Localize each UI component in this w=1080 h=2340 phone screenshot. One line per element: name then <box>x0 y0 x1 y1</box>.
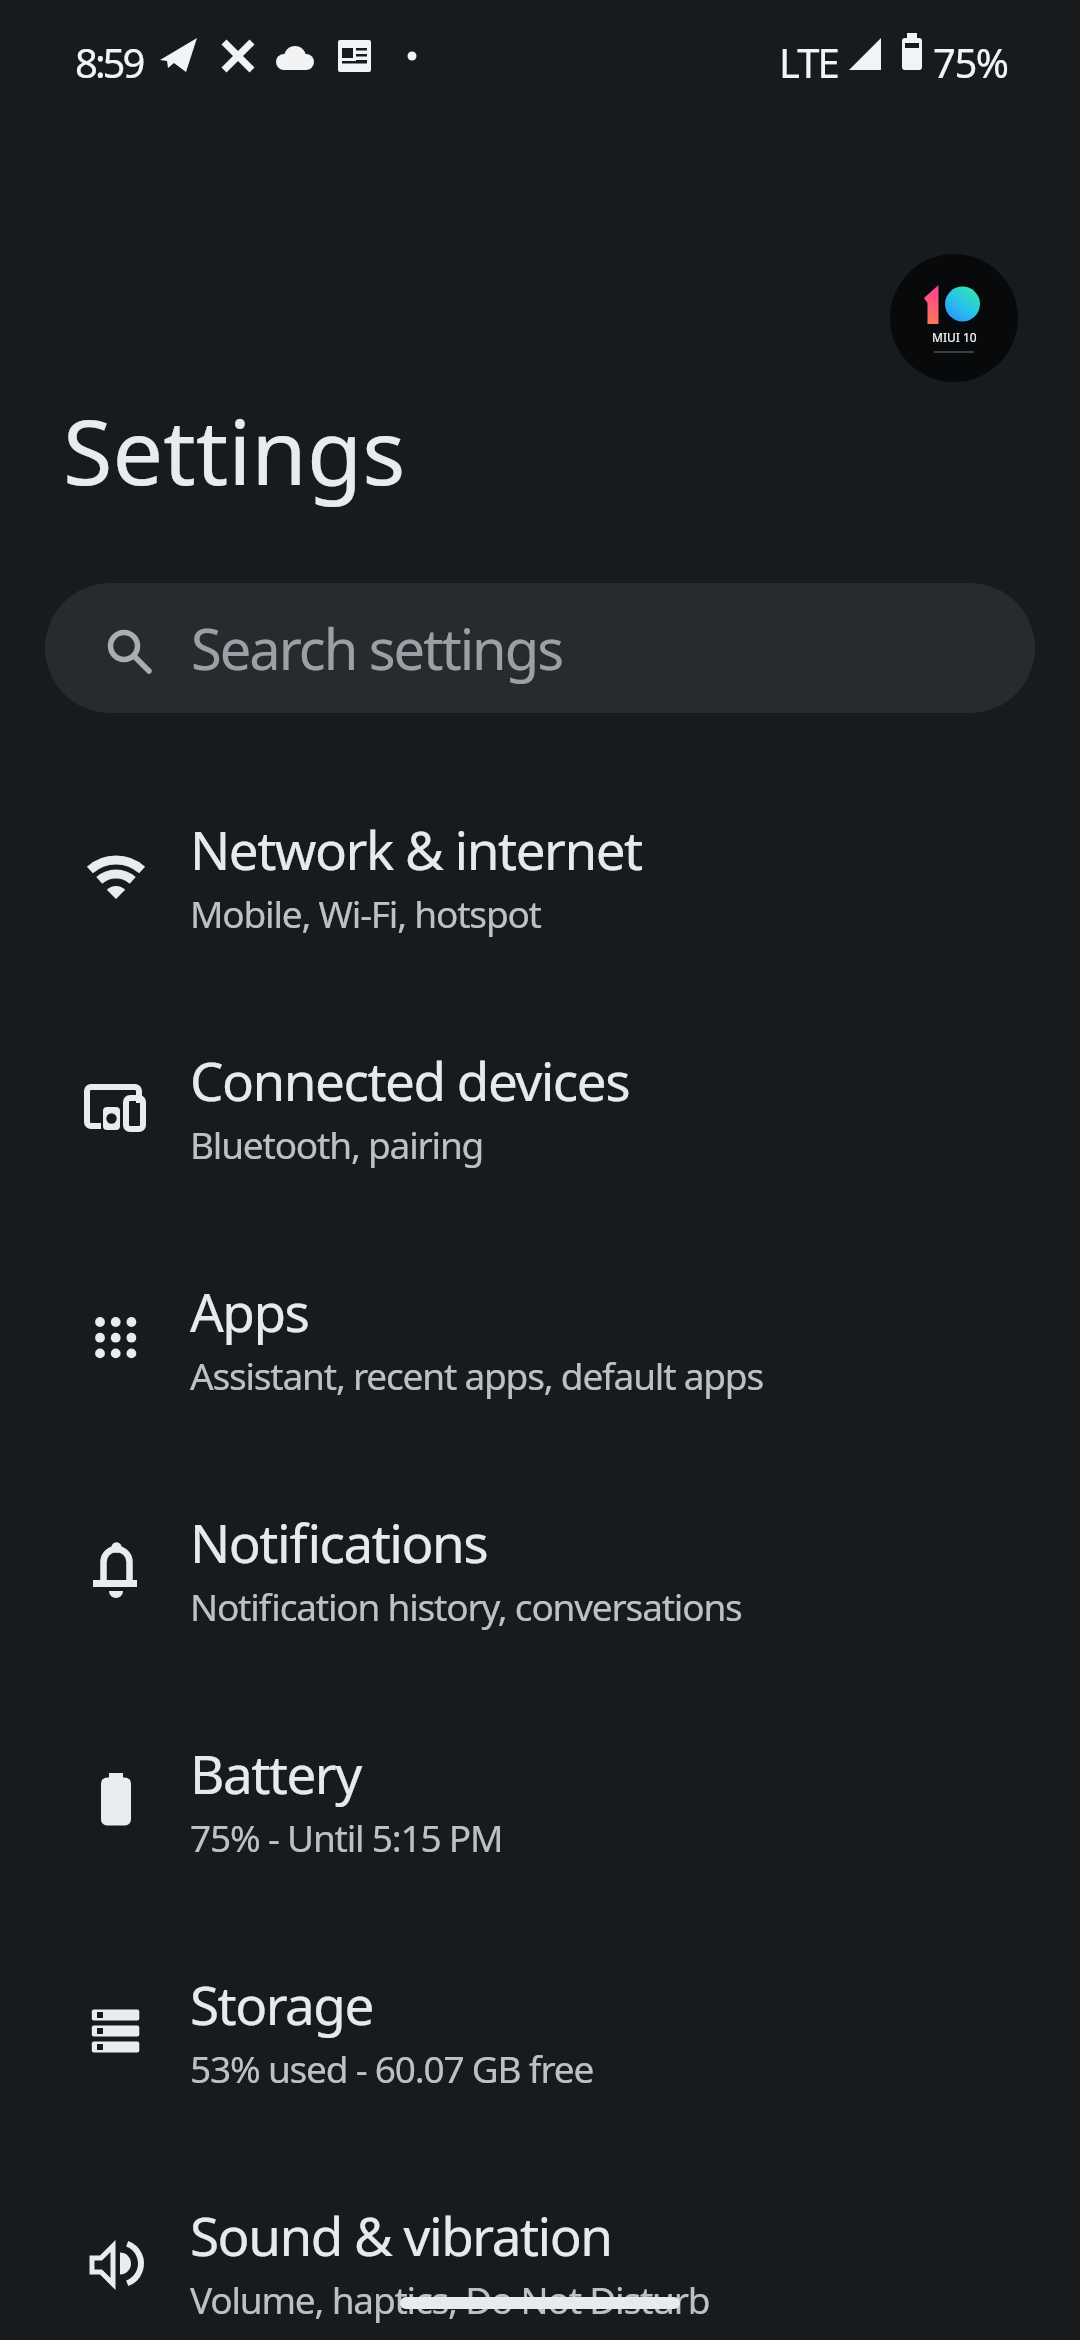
staticText: Notification history, conversations <box>190 1581 742 1631</box>
button[interactable]: Storage <box>0 1918 1080 2149</box>
staticText: Apps <box>190 1275 309 1347</box>
button[interactable]: Battery <box>0 1687 1080 1918</box>
staticText: MIUI 10 <box>932 329 977 345</box>
staticText: Network & internet <box>190 813 642 885</box>
staticText: Bluetooth, pairing <box>190 1119 484 1169</box>
staticText: Connected devices <box>190 1044 630 1116</box>
staticText: Storage <box>190 1968 373 2040</box>
staticText: 8:59 <box>75 35 143 89</box>
staticText: Assistant, recent apps, default apps <box>190 1350 763 1400</box>
button[interactable]: Apps <box>0 1225 1080 1456</box>
button[interactable]: Notifications <box>0 1456 1080 1687</box>
button[interactable]: Network & internet <box>0 763 1080 994</box>
button[interactable]: Search settings <box>45 583 1035 713</box>
button[interactable]: MIUI 10 <box>890 254 1018 382</box>
button[interactable]: Connected devices <box>0 994 1080 1225</box>
staticText: 75% <box>933 35 1008 89</box>
staticText: LTE <box>779 35 838 89</box>
staticText: Sound & vibration <box>190 2199 612 2271</box>
button[interactable]: Sound & vibration <box>0 2149 1080 2340</box>
staticText: Mobile, Wi-Fi, hotspot <box>190 888 541 938</box>
staticText: Notifications <box>190 1506 488 1578</box>
staticText: Volume, haptics, Do Not Disturb <box>190 2274 710 2324</box>
staticText: Search settings <box>191 610 562 686</box>
staticText: 75% - Until 5:15 PM <box>190 1812 503 1862</box>
staticText: Battery <box>190 1737 361 1809</box>
staticText: Settings <box>63 389 406 512</box>
staticText: 53% used - 60.07 GB free <box>190 2043 594 2093</box>
